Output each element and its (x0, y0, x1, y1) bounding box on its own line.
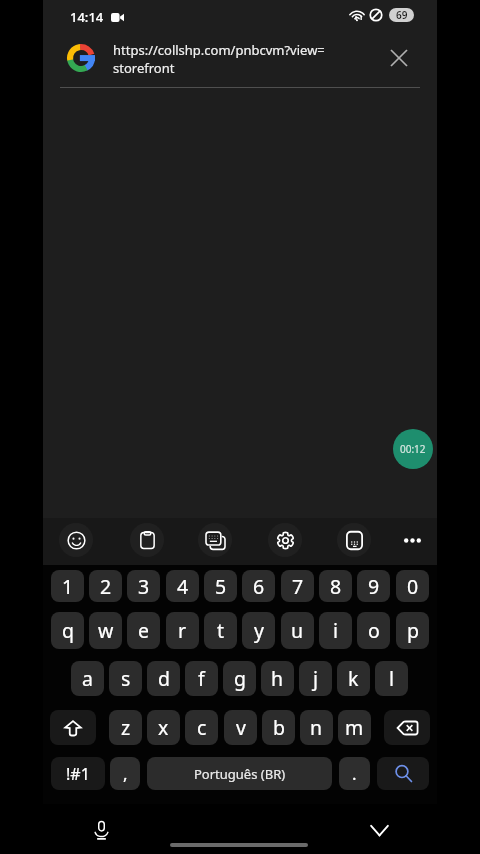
button[interactable]: d (147, 661, 180, 696)
staticText: s (121, 665, 131, 692)
button[interactable]: 6 (242, 570, 275, 602)
staticText: w (98, 617, 114, 644)
button[interactable]: Keyboard modes (198, 523, 232, 557)
button[interactable]: Close (383, 42, 415, 74)
button[interactable]: v (224, 710, 257, 745)
button[interactable]: Emoji (59, 523, 93, 557)
button[interactable]: , (110, 757, 140, 790)
staticText: t (217, 617, 225, 644)
staticText: f (198, 665, 205, 692)
button[interactable]: https://collshp.com/pnbcvm?view= (43, 32, 437, 88)
button[interactable]: w (89, 612, 122, 649)
staticText: c (197, 714, 207, 741)
button[interactable]: 7 (281, 570, 314, 602)
button[interactable]: More options (396, 524, 428, 556)
staticText: , (123, 762, 128, 785)
staticText: 14:14 (70, 8, 104, 26)
staticText: l (389, 665, 395, 692)
button[interactable]: 9 (357, 570, 390, 602)
button[interactable]: b (262, 710, 295, 745)
button[interactable]: 2 (89, 570, 122, 602)
button[interactable]: Settings (268, 523, 302, 557)
staticText: 5 (215, 573, 227, 600)
staticText: u (291, 617, 304, 644)
button[interactable]: r (166, 612, 199, 649)
button[interactable]: o (357, 612, 390, 649)
button[interactable]: 0 (396, 570, 429, 602)
staticText: j (313, 665, 319, 692)
button[interactable]: j (299, 661, 332, 696)
button[interactable]: f (185, 661, 218, 696)
button[interactable]: 00:12 (393, 429, 433, 469)
button[interactable]: 3 (127, 570, 160, 602)
staticText: 69 (396, 8, 408, 22)
staticText: Português (BR) (194, 765, 286, 783)
staticText: v (236, 714, 246, 741)
button[interactable]: !#1 (51, 757, 105, 790)
button[interactable]: l (375, 661, 408, 696)
staticText: o (368, 617, 380, 644)
staticText: 9 (368, 573, 380, 600)
staticText: 6 (253, 573, 265, 600)
button[interactable]: k (337, 661, 370, 696)
staticText: storefront (113, 59, 175, 77)
staticText: 7 (292, 573, 304, 600)
button[interactable]: Hide keyboard (360, 811, 398, 849)
button[interactable]: . (339, 757, 370, 790)
button[interactable]: a (71, 661, 104, 696)
staticText: 00:12 (400, 442, 426, 456)
button[interactable]: i (319, 612, 352, 649)
button[interactable]: q (51, 612, 84, 649)
button[interactable]: g (223, 661, 256, 696)
staticText: r (178, 617, 187, 644)
staticText: 0 (407, 573, 419, 600)
button[interactable]: z (109, 710, 142, 745)
button[interactable]: u (281, 612, 314, 649)
button[interactable]: c (185, 710, 218, 745)
button[interactable]: Search (377, 757, 429, 790)
staticText: 4 (177, 573, 189, 600)
staticText: z (121, 714, 131, 741)
staticText: g (234, 665, 246, 692)
button[interactable]: Backspace (384, 710, 430, 745)
staticText: m (345, 714, 364, 741)
staticText: 3 (138, 573, 150, 600)
staticText: 8 (330, 573, 342, 600)
button[interactable]: Voice input (82, 811, 120, 849)
button[interactable]: n (300, 710, 333, 745)
staticText: d (158, 665, 170, 692)
button[interactable]: p (396, 612, 429, 649)
staticText: i (333, 617, 339, 644)
staticText: 1 (62, 573, 74, 600)
button[interactable]: 1 (51, 570, 84, 602)
button[interactable]: y (242, 612, 275, 649)
staticText: y (254, 617, 264, 644)
button[interactable]: 5 (204, 570, 237, 602)
button[interactable]: Shift (50, 710, 96, 745)
staticText: k (348, 665, 359, 692)
button[interactable]: t (204, 612, 237, 649)
button[interactable]: s (109, 661, 142, 696)
staticText: !#1 (66, 763, 90, 785)
staticText: e (138, 617, 149, 644)
button[interactable]: Number pad (337, 523, 371, 557)
button[interactable]: Português (BR) (147, 757, 332, 790)
button[interactable]: m (338, 710, 371, 745)
button[interactable]: 4 (166, 570, 199, 602)
button[interactable]: 8 (319, 570, 352, 602)
button[interactable]: h (261, 661, 294, 696)
staticText: https://collshp.com/pnbcvm?view= (113, 41, 325, 59)
staticText: x (158, 714, 169, 741)
button[interactable]: Clipboard (130, 523, 164, 557)
staticText: n (310, 714, 323, 741)
staticText: p (407, 617, 419, 644)
button[interactable]: x (147, 710, 180, 745)
staticText: . (352, 762, 357, 785)
staticText: 2 (100, 573, 112, 600)
staticText: h (271, 665, 284, 692)
button[interactable]: e (127, 612, 160, 649)
staticText: b (273, 714, 285, 741)
staticText: a (82, 665, 93, 692)
staticText: q (62, 617, 74, 644)
